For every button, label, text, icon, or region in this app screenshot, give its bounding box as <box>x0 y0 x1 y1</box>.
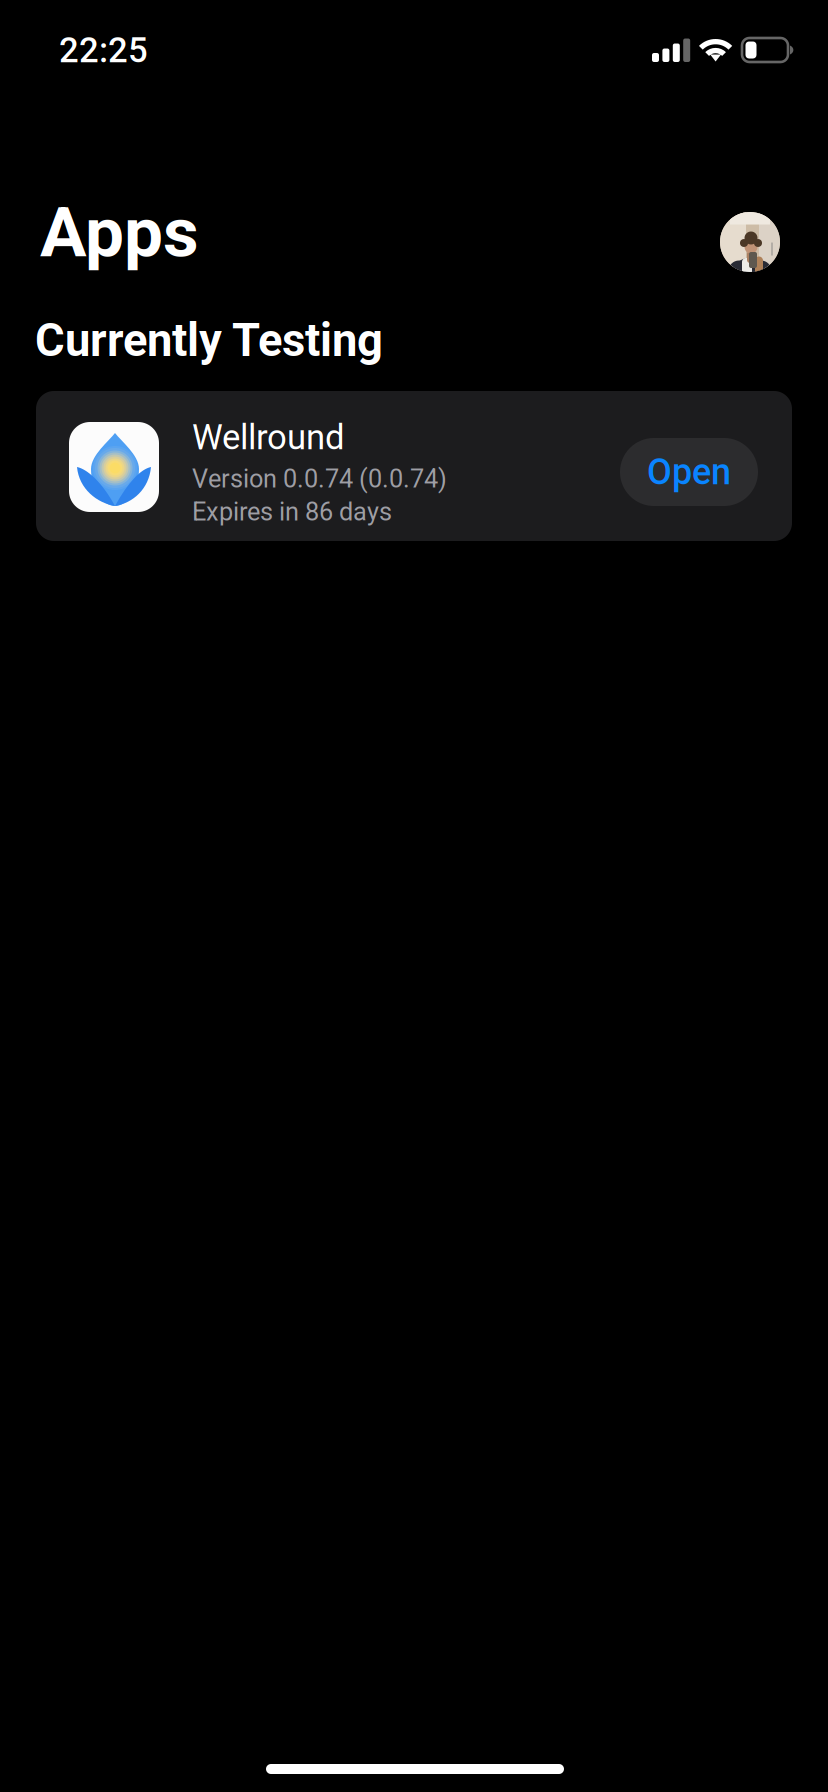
staticText: 22:25 <box>59 30 148 71</box>
staticText: Currently Testing <box>35 314 383 367</box>
staticText: Expires in 86 days <box>192 497 392 527</box>
staticText: Apps <box>40 192 199 273</box>
staticText: Version 0.0.74 (0.0.74) <box>192 464 447 494</box>
button[interactable]: Open <box>620 438 758 506</box>
button[interactable]: Wellround <box>36 391 792 541</box>
staticText: Open <box>647 451 731 493</box>
staticText: Wellround <box>192 417 345 458</box>
button[interactable]: Account <box>720 212 780 272</box>
